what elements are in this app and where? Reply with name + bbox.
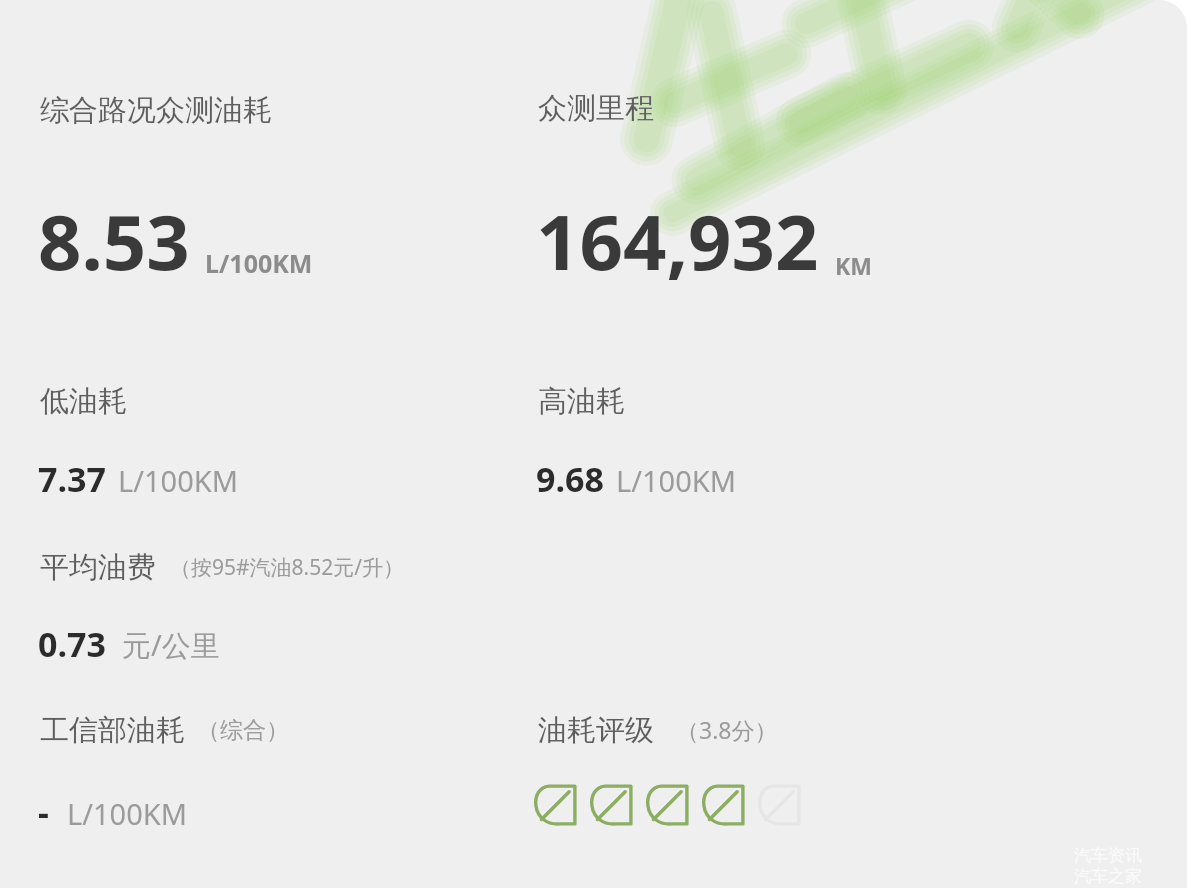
button[interactable]: 众测里程: [538, 90, 654, 127]
staticText: （综合）: [197, 716, 289, 745]
staticText: 汽车资讯: [1074, 845, 1142, 866]
staticText: -: [38, 789, 49, 835]
button[interactable]: 油耗评级 3.8 分: [534, 783, 802, 827]
staticText: 8.53: [38, 189, 190, 293]
staticText: 高油耗: [538, 383, 625, 420]
staticText: 0.73: [38, 621, 106, 667]
staticText: L/100KM: [118, 461, 239, 500]
staticText: 工信部油耗: [40, 712, 185, 749]
staticText: 低油耗: [40, 383, 127, 420]
staticText: 汽车之家: [1074, 866, 1142, 887]
staticText: KM: [835, 250, 872, 281]
staticText: 164,932: [536, 189, 819, 293]
staticText: L/100KM: [205, 246, 313, 280]
staticText: 平均油费: [40, 549, 156, 586]
button[interactable]: 低油耗: [40, 383, 127, 420]
button[interactable]: 平均油费: [40, 549, 405, 586]
staticText: 元/公里: [122, 625, 220, 665]
staticText: 9.68: [536, 456, 604, 502]
button[interactable]: 工信部油耗: [40, 712, 289, 749]
staticText: （3.8分）: [676, 714, 778, 745]
staticText: L/100KM: [67, 794, 188, 833]
staticText: 综合路况众测油耗: [40, 92, 272, 129]
staticText: （按95#汽油8.52元/升）: [170, 553, 405, 582]
staticText: 7.37: [38, 456, 106, 502]
staticText: 众测里程: [538, 90, 654, 127]
staticText: 油耗评级: [538, 712, 654, 749]
button[interactable]: 油耗评级: [538, 712, 778, 749]
staticText: L/100KM: [616, 461, 737, 500]
button[interactable]: 综合路况众测油耗: [40, 92, 272, 129]
button[interactable]: 高油耗: [538, 383, 625, 420]
